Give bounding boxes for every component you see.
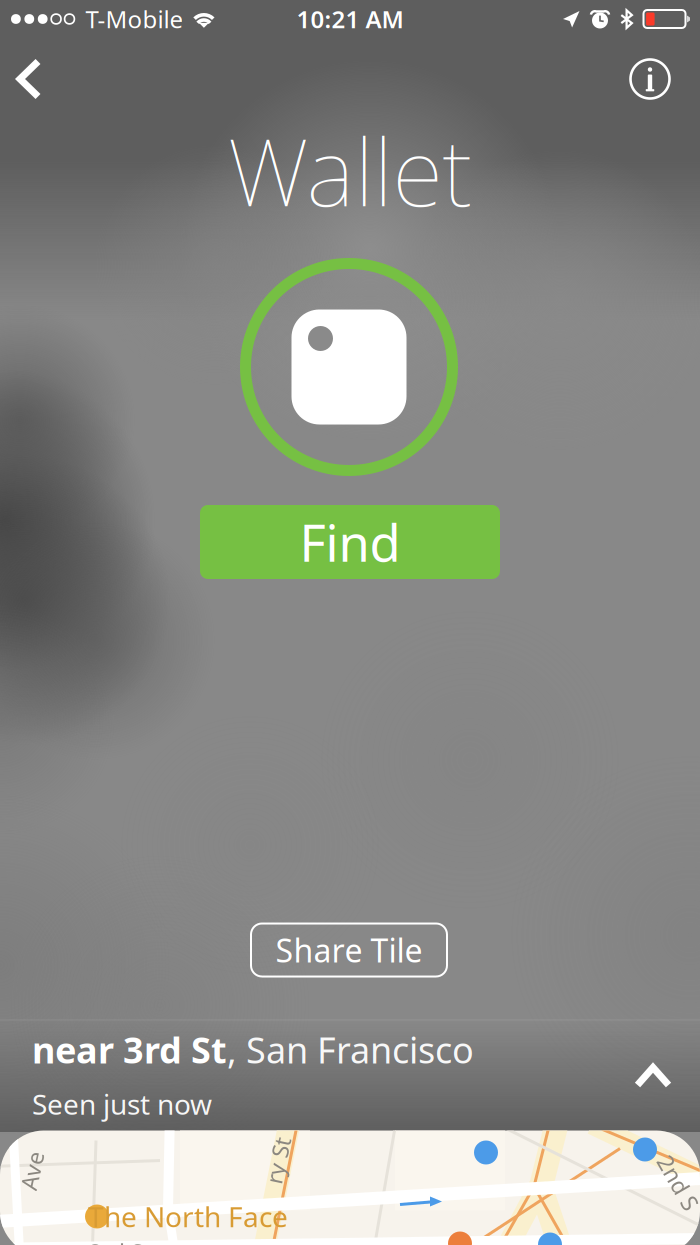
staticText: , San Francisco [227,1025,474,1073]
staticText: T-Mobile [85,3,183,35]
button[interactable]: Information [619,48,681,110]
staticText: near 3rd St [32,1025,227,1073]
staticText: 10:21 AM [296,3,403,35]
staticText: Wallet [227,108,472,232]
staticText: Share Tile [275,929,422,971]
staticText: 2nd S [648,1167,700,1197]
button[interactable]: Find [200,505,500,579]
staticText: 3rd St [89,1237,151,1245]
button[interactable]: Back [0,46,62,112]
staticText: Find [299,508,400,576]
staticText: Ave [12,1155,51,1185]
staticText: Seen just now [32,1085,212,1122]
staticText: The North Face [88,1198,288,1235]
staticText: ry St [254,1145,301,1175]
button[interactable]: Share Tile [251,923,447,976]
button[interactable]: Show map [621,1046,685,1106]
